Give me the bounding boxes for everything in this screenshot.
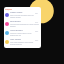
- staticText: The new designs look great overall thank…: [10, 41, 39, 45]
- staticText: Sofia Rivera: [10, 20, 35, 23]
- staticText: 8:20: [35, 39, 39, 41]
- button[interactable]: Liam Walker: [4, 37, 41, 46]
- button[interactable]: Sofia Rivera: [4, 19, 41, 28]
- staticText: Sent you the project files for review to…: [10, 14, 39, 18]
- staticText: Liam Walker: [10, 38, 35, 41]
- staticText: 8:55: [35, 30, 39, 32]
- button[interactable]: Amelia Clarke: [4, 10, 41, 19]
- staticText: 9:12: [35, 21, 39, 23]
- staticText: Are we still meeting at noon today pleas…: [10, 23, 39, 27]
- staticText: Thanks! I will check it this afternoon o…: [10, 32, 39, 36]
- staticText: Noah Bennett: [10, 29, 35, 32]
- staticText: Inbox: [5, 7, 12, 10]
- staticText: 9:41: [35, 12, 39, 14]
- button[interactable]: Noah Bennett: [4, 28, 41, 37]
- staticText: Amelia Clarke: [10, 11, 35, 14]
